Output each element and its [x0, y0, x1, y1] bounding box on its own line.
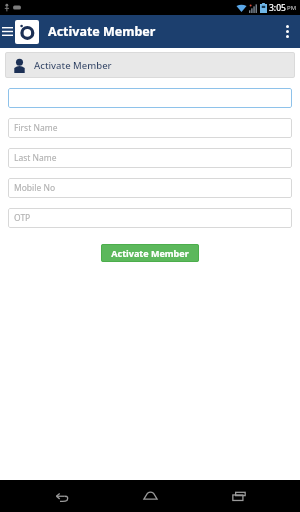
staticText: Mobile No — [14, 182, 56, 194]
button[interactable]: OTP — [8, 208, 292, 228]
button[interactable]: Activate Member — [5, 52, 295, 78]
button[interactable]: Home — [122, 480, 178, 512]
staticText: Activate Member — [48, 23, 156, 40]
staticText: PM — [287, 4, 297, 12]
button[interactable]: App logo — [15, 20, 39, 44]
button[interactable]: Recent apps — [211, 480, 267, 512]
staticText: Last Name — [14, 152, 57, 164]
staticText: Activate Member — [111, 247, 189, 259]
staticText: First Name — [14, 122, 58, 134]
button[interactable]: More options — [274, 15, 300, 48]
button[interactable]: First Name — [8, 118, 292, 138]
button[interactable]: Back — [33, 480, 89, 512]
staticText: 3:05 — [269, 2, 286, 14]
staticText: OTP — [14, 212, 31, 224]
button[interactable] — [8, 88, 292, 108]
button[interactable]: Mobile No — [8, 178, 292, 198]
button[interactable]: Last Name — [8, 148, 292, 168]
button[interactable]: Activate Member — [101, 244, 199, 262]
staticText: Activate Member — [34, 59, 112, 72]
button[interactable]: Open navigation menu — [0, 15, 14, 48]
